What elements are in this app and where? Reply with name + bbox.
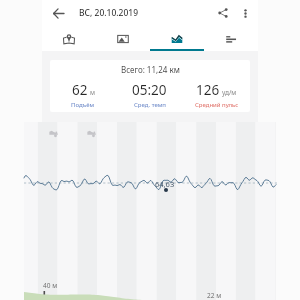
button[interactable]: Back (47, 2, 69, 24)
staticText: Средний пульс (195, 101, 239, 109)
staticText: Подъём (71, 101, 95, 109)
staticText: 64,63 (155, 179, 175, 189)
button[interactable]: Splits (204, 28, 258, 51)
staticText: 05:20 (132, 81, 167, 99)
staticText: Всего: 11,24 км (121, 64, 180, 75)
staticText: ВС, 20.10.2019 (79, 7, 139, 19)
button[interactable]: Map (42, 28, 96, 51)
staticText: м (90, 88, 95, 97)
button[interactable]: Charts (150, 28, 204, 51)
staticText: Сред. темп (134, 101, 166, 109)
button[interactable]: More options (234, 2, 256, 24)
button[interactable]: Heart rate (84, 125, 98, 139)
staticText: 62 (72, 81, 88, 99)
button[interactable]: Share (212, 2, 234, 24)
staticText: уд/м (222, 88, 237, 97)
button[interactable]: Photos (96, 28, 150, 51)
button[interactable]: Pace (46, 125, 60, 139)
staticText: 126 (196, 81, 220, 99)
button[interactable]: Всего: 11,24 км (50, 60, 250, 112)
staticText: 40 м (43, 281, 58, 290)
staticText: 22 м (207, 291, 222, 300)
